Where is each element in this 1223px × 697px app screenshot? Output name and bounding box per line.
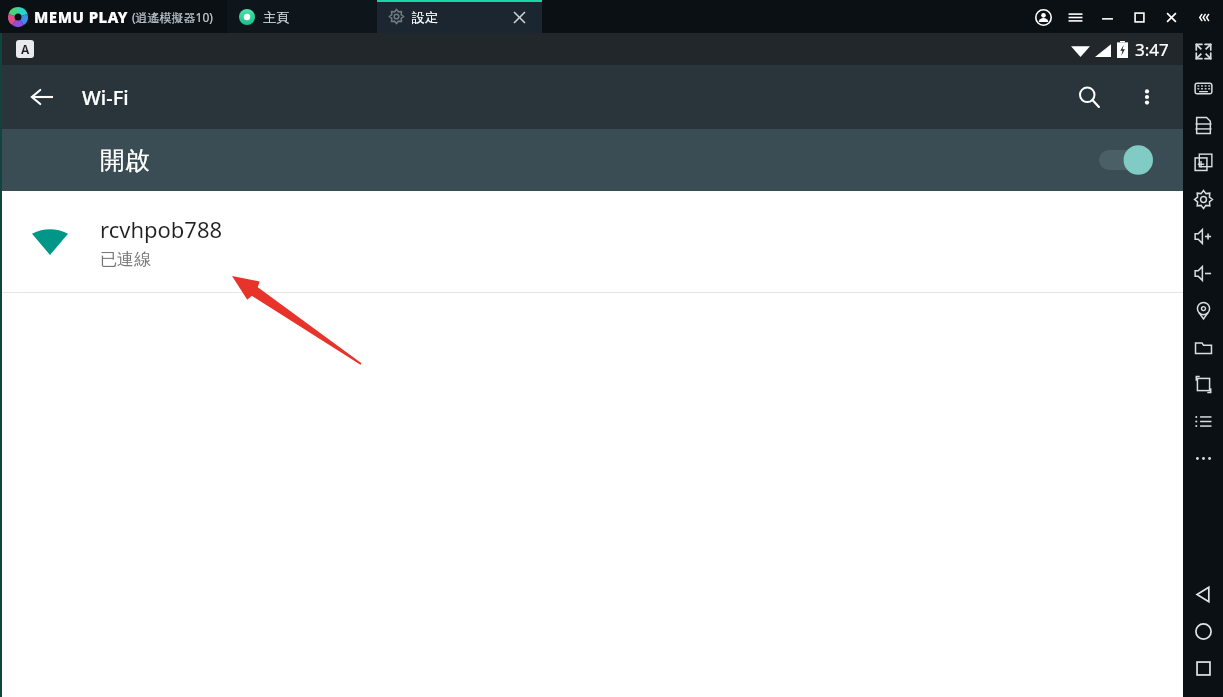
button[interactable]: Account [1027,1,1059,33]
button[interactable]: Search [1065,73,1113,121]
staticText: 3:47 [1135,38,1169,61]
button[interactable]: Volume down [1183,255,1223,292]
button[interactable]: Menu [1059,1,1091,33]
button[interactable]: Collapse [1187,1,1219,33]
button[interactable]: Fullscreen [1183,33,1223,70]
button[interactable]: Operation list [1183,403,1223,440]
button[interactable]: Location [1183,292,1223,329]
button[interactable]: Recents [1183,650,1223,687]
staticText: MEMU PLAY [34,7,128,27]
button[interactable]: More options [1123,73,1171,121]
button[interactable]: Minimize [1091,1,1123,33]
staticText: 設定 [412,9,438,25]
button[interactable]: 設定 [377,0,542,33]
staticText: 已連線 [100,249,151,270]
staticText: 開啟 [100,145,150,176]
button[interactable]: Home [1183,613,1223,650]
button[interactable]: Files [1183,329,1223,366]
button[interactable]: rcvhpob788 [0,191,1183,292]
button[interactable]: Keyboard [1183,70,1223,107]
button[interactable]: 開啟 [0,129,1183,191]
button[interactable]: Settings [1183,181,1223,218]
staticText: 主頁 [263,9,289,25]
button[interactable]: Multi instance [1183,144,1223,181]
staticText: (逍遙模擬器10) [132,9,213,25]
button[interactable]: More [1183,440,1223,477]
button[interactable]: Close [1155,1,1187,33]
button[interactable]: Back [22,77,62,117]
button[interactable]: Close tab [508,6,530,28]
button[interactable]: 主頁 [227,0,377,33]
staticText: rcvhpob788 [100,214,223,244]
button[interactable]: Install APK [1183,107,1223,144]
button[interactable]: Back [1183,576,1223,613]
button[interactable]: Screen rotate [1183,366,1223,403]
staticText: A [21,41,30,57]
button[interactable]: Wi-Fi toggle [1099,144,1153,176]
staticText: Wi-Fi [82,84,129,111]
button[interactable]: Volume up [1183,218,1223,255]
button[interactable]: Maximize [1123,1,1155,33]
